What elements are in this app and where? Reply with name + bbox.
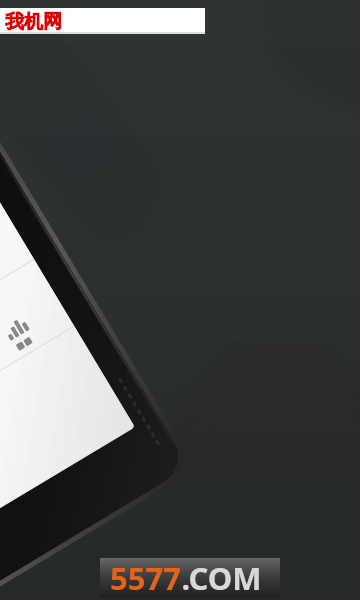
staticText: 我机网 www.5577.com	[5, 8, 210, 34]
button[interactable]: 我机网 www.5577.com	[0, 8, 205, 34]
button[interactable]: 5577.COM	[100, 558, 280, 598]
staticText: .COM	[181, 557, 262, 597]
staticText: 5577	[110, 557, 181, 597]
